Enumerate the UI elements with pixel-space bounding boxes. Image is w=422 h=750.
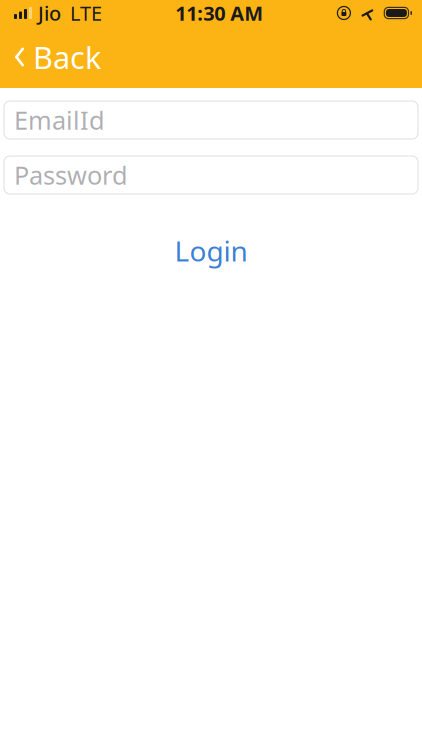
- staticText: Back: [33, 37, 101, 77]
- staticText: Jio: [38, 0, 61, 26]
- staticText: 11:30 AM: [175, 0, 263, 26]
- staticText: EmailId: [14, 103, 105, 137]
- staticText: Login: [174, 232, 247, 269]
- button[interactable]: Back: [0, 29, 115, 85]
- button[interactable]: Login: [148, 224, 273, 277]
- staticText: LTE: [70, 0, 102, 26]
- staticText: Password: [14, 158, 128, 192]
